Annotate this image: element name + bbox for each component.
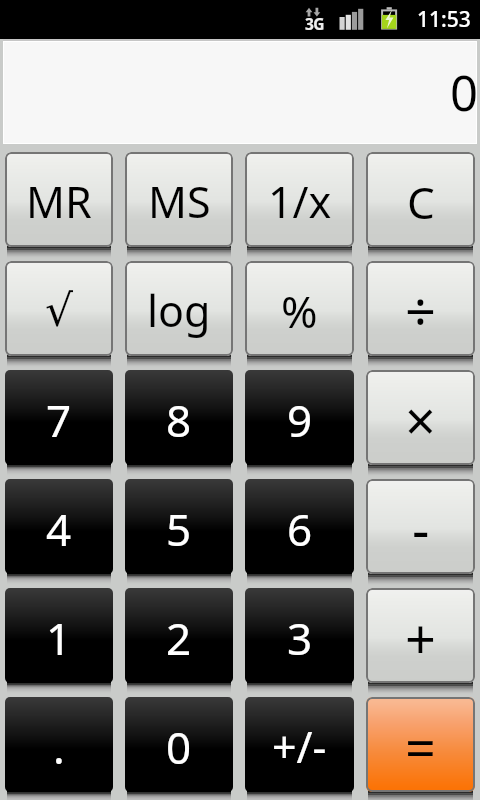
- button[interactable]: 4: [5, 479, 113, 574]
- staticText: 11:53: [417, 5, 471, 34]
- button[interactable]: 6: [245, 479, 354, 574]
- button[interactable]: -: [366, 479, 475, 574]
- staticText: 0: [450, 59, 479, 126]
- staticText: 1: [46, 608, 72, 668]
- button[interactable]: ÷: [366, 261, 475, 356]
- button[interactable]: C: [366, 152, 475, 247]
- button[interactable]: √: [5, 261, 113, 356]
- staticText: =: [405, 710, 436, 784]
- staticText: 8: [166, 390, 192, 450]
- button[interactable]: .: [5, 697, 113, 792]
- button[interactable]: 3: [245, 588, 354, 683]
- staticText: 6: [287, 499, 313, 559]
- button[interactable]: =: [366, 697, 475, 792]
- button[interactable]: +/-: [245, 697, 354, 792]
- button[interactable]: MR: [5, 152, 113, 247]
- staticText: +/-: [272, 717, 327, 776]
- staticText: +: [405, 601, 436, 675]
- button[interactable]: 1/x: [245, 152, 354, 247]
- staticText: 0: [166, 717, 192, 777]
- button[interactable]: +: [366, 588, 475, 683]
- staticText: ×: [405, 383, 436, 457]
- staticText: 3: [287, 608, 313, 668]
- button[interactable]: MS: [125, 152, 233, 247]
- button[interactable]: log: [125, 261, 233, 356]
- button[interactable]: ×: [366, 370, 475, 465]
- staticText: 7: [46, 390, 72, 450]
- staticText: MS: [148, 172, 211, 231]
- staticText: .: [53, 717, 65, 777]
- staticText: -: [412, 492, 430, 566]
- button[interactable]: 0: [125, 697, 233, 792]
- staticText: log: [147, 281, 211, 340]
- staticText: 9: [287, 390, 313, 450]
- button[interactable]: %: [245, 261, 354, 356]
- button[interactable]: 5: [125, 479, 233, 574]
- staticText: %: [281, 281, 318, 341]
- staticText: 3G: [305, 13, 324, 34]
- button[interactable]: 2: [125, 588, 233, 683]
- staticText: C: [407, 172, 435, 232]
- staticText: 4: [46, 499, 72, 559]
- staticText: 5: [166, 499, 192, 559]
- staticText: 1/x: [268, 172, 332, 231]
- staticText: MR: [26, 172, 92, 231]
- button[interactable]: 1: [5, 588, 113, 683]
- staticText: ÷: [405, 274, 436, 348]
- button[interactable]: 8: [125, 370, 233, 465]
- button[interactable]: 7: [5, 370, 113, 465]
- button[interactable]: 9: [245, 370, 354, 465]
- staticText: √: [45, 285, 74, 336]
- staticText: 2: [166, 608, 192, 668]
